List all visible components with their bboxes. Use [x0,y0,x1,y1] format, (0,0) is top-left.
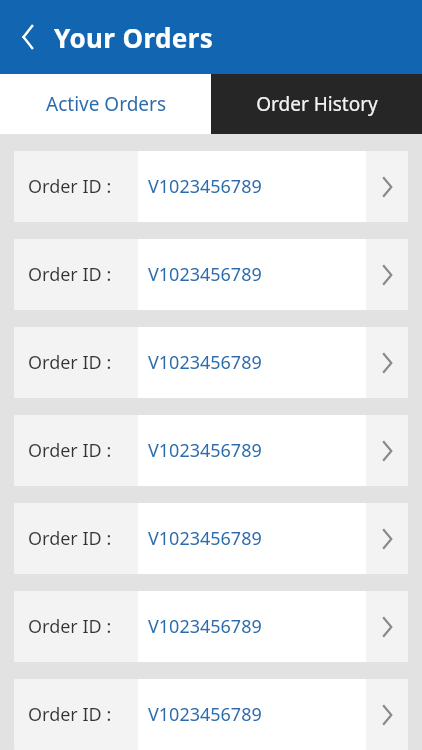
staticText: V1023456789 [148,174,262,199]
staticText: Order ID : [28,262,112,287]
button[interactable]: Order ID : [14,503,408,574]
other: Open order details [366,239,408,310]
button[interactable]: Order ID : [14,415,408,486]
other: Open order details [366,591,408,662]
other: Open order details [366,327,408,398]
button[interactable]: Order ID : [14,679,408,750]
button[interactable]: Order ID : [14,591,408,662]
button[interactable]: Active Orders [0,74,211,134]
staticText: Your Orders [54,20,214,55]
button[interactable]: Order ID : [14,327,408,398]
staticText: V1023456789 [148,526,262,551]
staticText: Order ID : [28,438,112,463]
staticText: V1023456789 [148,614,262,639]
button[interactable]: Back [10,19,46,55]
other: Open order details [366,151,408,222]
staticText: Order History [256,91,378,117]
staticText: V1023456789 [148,438,262,463]
button[interactable]: Order ID : [14,151,408,222]
other: Open order details [366,679,408,750]
other: Open order details [366,503,408,574]
staticText: Order ID : [28,174,112,199]
staticText: Order ID : [28,350,112,375]
staticText: Order ID : [28,614,112,639]
other: Open order details [366,415,408,486]
button[interactable]: Order ID : [14,239,408,310]
staticText: V1023456789 [148,350,262,375]
staticText: Order ID : [28,526,112,551]
button[interactable]: Order History [211,74,422,134]
staticText: V1023456789 [148,262,262,287]
staticText: V1023456789 [148,702,262,727]
staticText: Active Orders [46,91,166,117]
staticText: Order ID : [28,702,112,727]
